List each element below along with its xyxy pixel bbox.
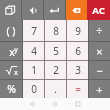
staticText: y	[14, 45, 18, 55]
staticText: ÷	[96, 23, 103, 38]
button[interactable]: −	[89, 61, 110, 79]
button[interactable]: 1	[23, 61, 44, 79]
staticText: 7	[31, 24, 37, 38]
button[interactable]: x	[0, 42, 22, 60]
staticText: =	[75, 82, 81, 96]
staticText: +	[96, 82, 103, 97]
staticText: 2	[53, 63, 59, 77]
button[interactable]: 8	[45, 20, 66, 41]
staticText: AC	[92, 4, 105, 17]
button[interactable]: +	[89, 80, 110, 98]
button[interactable]: 3	[67, 61, 88, 79]
staticText: 5	[53, 44, 59, 58]
staticText: %	[7, 82, 16, 96]
button[interactable]: 5	[45, 42, 66, 60]
button[interactable]: x	[0, 61, 22, 79]
staticText: −	[96, 63, 103, 78]
staticText: 8	[53, 24, 59, 38]
staticText: 3	[75, 63, 81, 77]
staticText: .	[54, 82, 57, 96]
staticText: x	[9, 45, 15, 58]
staticText: ×	[96, 44, 103, 59]
staticText: 1	[31, 63, 37, 77]
button[interactable]: Copy	[0, 0, 21, 20]
button[interactable]: 9	[67, 20, 88, 41]
button[interactable]: Home	[49, 98, 61, 110]
button[interactable]: Back	[26, 98, 38, 110]
staticText: 0	[31, 82, 37, 96]
button[interactable]: .	[45, 80, 66, 98]
button[interactable]: 7	[23, 20, 44, 41]
button[interactable]: %	[0, 80, 22, 98]
button[interactable]: Backspace	[66, 0, 87, 20]
button[interactable]: Recents	[72, 98, 84, 110]
staticText: x	[14, 67, 18, 77]
button[interactable]: 0	[23, 80, 44, 98]
staticText: 4	[31, 44, 37, 58]
button[interactable]: AC	[87, 0, 110, 20]
button[interactable]: =	[67, 80, 88, 98]
staticText: 6	[75, 44, 81, 58]
button[interactable]: 2	[45, 61, 66, 79]
button[interactable]: Sound	[22, 0, 43, 20]
staticText: 9	[75, 24, 81, 38]
button[interactable]: 6	[67, 42, 88, 60]
button[interactable]: ×	[89, 42, 110, 60]
button[interactable]: ÷	[89, 20, 110, 41]
button[interactable]: 4	[23, 42, 44, 60]
button[interactable]: ( )	[0, 20, 22, 41]
button[interactable]: Undo	[44, 0, 65, 20]
staticText: ( )	[6, 24, 16, 38]
